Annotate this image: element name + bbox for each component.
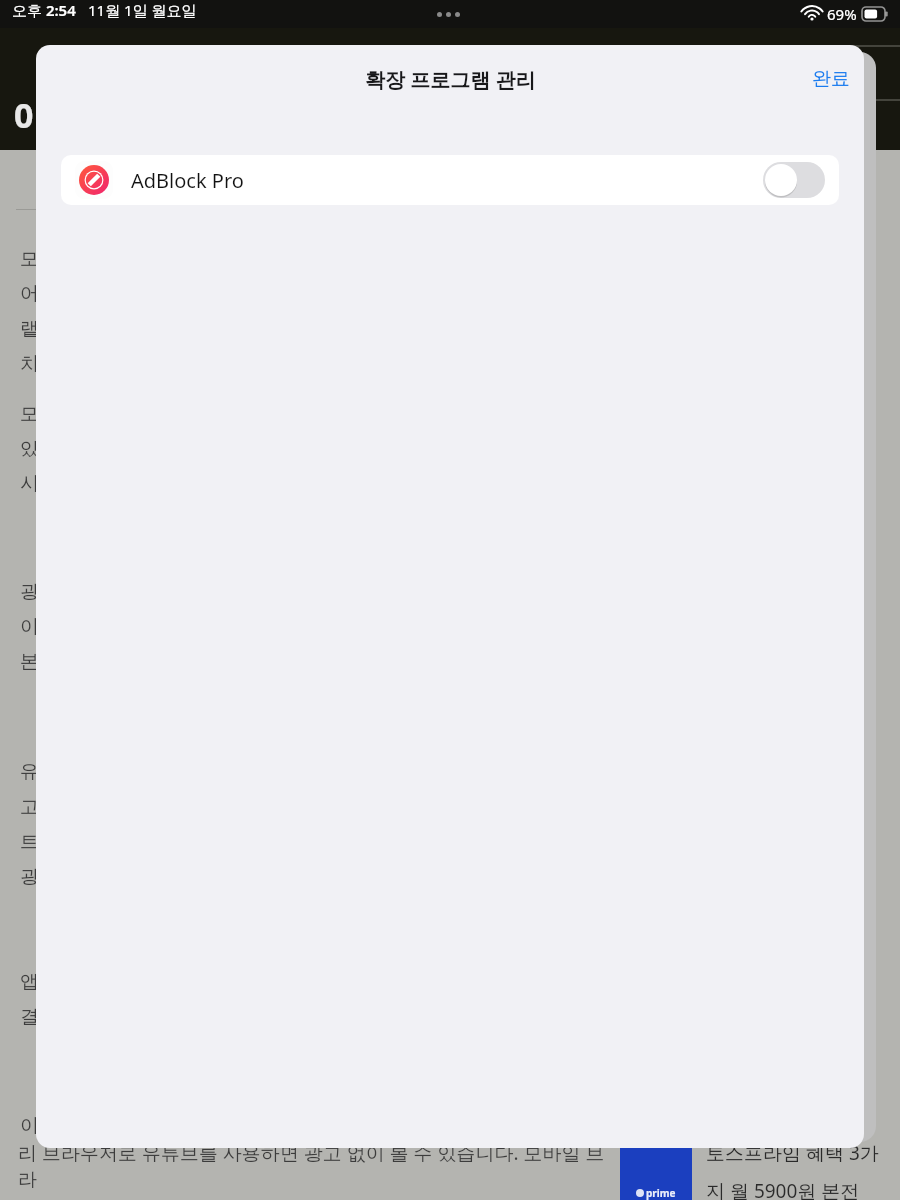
button[interactable]: AdBlock Pro 사용 설정 xyxy=(763,162,825,198)
staticText: 지 월 5900원 본전 xyxy=(706,1178,860,1200)
staticText: 치 xyxy=(20,352,39,376)
staticText: 유 xyxy=(20,760,39,784)
staticText: 모 xyxy=(20,402,39,426)
staticText: 11월 1일 월요일 xyxy=(88,0,197,20)
staticText: 본 xyxy=(20,650,39,674)
staticText: 굉 xyxy=(20,865,39,889)
staticText: AdBlock Pro xyxy=(131,167,244,194)
staticText: 앱 xyxy=(20,970,39,994)
staticText: prime xyxy=(646,1186,676,1200)
staticText: 이 xyxy=(20,615,39,639)
staticText: 트 xyxy=(20,830,39,854)
staticText: 토스프라임 혜택 3가 xyxy=(706,1140,879,1166)
staticText: 리 브라우저로 유튜브를 사용하면 광고 없이 볼 수 있습니다. 모바일 브라 xyxy=(18,1140,612,1192)
staticText: 69% xyxy=(827,4,857,24)
staticText: 이 xyxy=(20,1114,39,1138)
button[interactable]: 완료 xyxy=(798,59,864,99)
staticText: 모 xyxy=(20,247,39,271)
staticText: 랱 xyxy=(20,317,39,341)
staticText: 확장 프로그램 관리 xyxy=(365,66,536,93)
staticText: 있 xyxy=(20,437,39,461)
staticText: 결 xyxy=(20,1005,39,1029)
staticText: 고 xyxy=(20,795,39,819)
staticText: 완료 xyxy=(812,67,850,91)
staticText: 오후 2:54 xyxy=(12,0,76,20)
staticText: 0 xyxy=(14,92,34,138)
staticText: 굉 xyxy=(20,580,39,604)
staticText: 시 xyxy=(20,472,39,496)
staticText: 어 xyxy=(20,282,39,306)
button[interactable]: AdBlock Pro xyxy=(61,155,839,205)
